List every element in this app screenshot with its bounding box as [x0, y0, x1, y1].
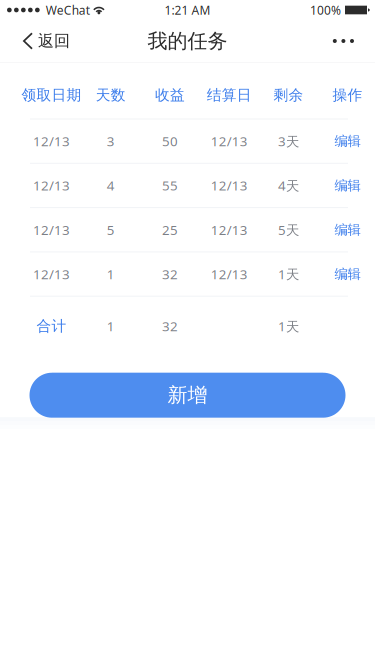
button[interactable]: 返回	[0, 20, 82, 62]
staticText: 32	[162, 317, 178, 335]
staticText: 领取日期	[22, 86, 82, 104]
staticText: 12/13	[33, 132, 70, 150]
staticText: 12/13	[211, 132, 248, 150]
staticText: 4天	[278, 177, 299, 194]
button[interactable]: 编辑	[318, 164, 375, 207]
staticText: 天数	[96, 86, 126, 104]
staticText: 4	[107, 177, 115, 194]
staticText: 新增	[167, 383, 207, 407]
staticText: 剩余	[273, 86, 303, 104]
button[interactable]: 编辑	[318, 208, 375, 251]
staticText: 结算日	[207, 86, 252, 104]
staticText: 12/13	[33, 177, 70, 194]
staticText: 编辑	[335, 222, 361, 238]
staticText: 12/13	[211, 221, 248, 239]
staticText: 32	[162, 265, 178, 283]
staticText: 1天	[278, 265, 299, 283]
staticText: 我的任务	[147, 29, 227, 53]
staticText: 3天	[278, 132, 299, 150]
staticText: WeChat	[46, 2, 90, 18]
staticText: 1	[107, 317, 115, 335]
staticText: 返回	[38, 31, 70, 51]
staticText: 1	[107, 265, 115, 283]
staticText: 55	[162, 177, 178, 194]
button[interactable]: 编辑	[318, 119, 375, 163]
staticText: 1天	[278, 317, 299, 335]
staticText: 12/13	[211, 265, 248, 283]
staticText: 5天	[278, 221, 299, 239]
staticText: 12/13	[33, 221, 70, 239]
button[interactable]: 编辑	[318, 252, 375, 296]
staticText: 收益	[155, 86, 185, 104]
staticText: 25	[162, 221, 178, 239]
staticText: 50	[162, 132, 178, 150]
staticText: 合计	[37, 317, 67, 335]
staticText: 编辑	[335, 177, 361, 194]
staticText: 编辑	[335, 266, 361, 282]
staticText: 12/13	[211, 177, 248, 194]
staticText: 3	[107, 132, 115, 150]
staticText: 5	[107, 221, 115, 239]
button[interactable]: More options	[319, 20, 375, 62]
staticText: 编辑	[335, 133, 361, 149]
button[interactable]: 新增	[29, 373, 345, 418]
staticText: 12/13	[33, 265, 70, 283]
staticText: 100%	[310, 2, 341, 18]
staticText: 操作	[333, 86, 363, 104]
staticText: 1:21 AM	[164, 2, 210, 18]
